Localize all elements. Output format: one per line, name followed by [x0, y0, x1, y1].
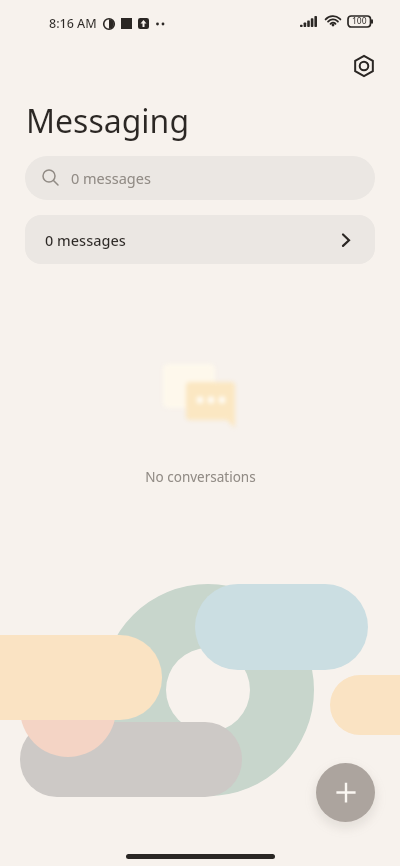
- button[interactable]: Settings: [344, 46, 384, 86]
- staticText: Messaging: [26, 99, 190, 143]
- staticText: No conversations: [145, 468, 256, 486]
- button[interactable]: 0 messages: [25, 215, 375, 264]
- staticText: 100: [352, 15, 367, 27]
- staticText: 8:16 AM: [49, 15, 97, 32]
- staticText: 0 messages: [45, 230, 126, 250]
- button[interactable]: New conversation: [316, 763, 375, 822]
- staticText: 0 messages: [71, 168, 151, 188]
- button[interactable]: 0 messages: [25, 156, 375, 200]
